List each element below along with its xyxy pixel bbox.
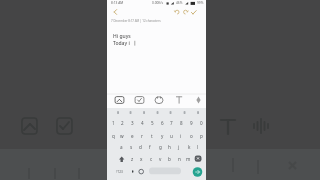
button[interactable]: [180, 6, 189, 18]
staticText: b: [168, 156, 171, 162]
staticText: 9: [190, 120, 193, 126]
button[interactable]: [192, 94, 205, 106]
staticText: m: [186, 156, 191, 162]
staticText: j: [178, 144, 180, 150]
button[interactable]: [192, 166, 203, 177]
staticText: s: [130, 144, 133, 150]
staticText: 6: [161, 120, 164, 126]
button[interactable]: [133, 94, 146, 106]
staticText: 0.00K/s: [152, 1, 164, 5]
button[interactable]: [113, 94, 126, 106]
staticText: p: [200, 133, 203, 139]
staticText: Hi guys: [113, 33, 131, 40]
button[interactable]: [173, 94, 186, 106]
staticText: u: [170, 133, 173, 139]
staticText: i: [180, 133, 182, 139]
staticText: o: [190, 133, 193, 139]
staticText: 0: [200, 120, 203, 126]
staticText: 99%: [197, 1, 204, 5]
staticText: ?123: [116, 170, 123, 174]
staticText: l: [197, 144, 199, 150]
staticText: k: [188, 144, 191, 150]
staticText: 8:13 AM: [111, 1, 124, 5]
staticText: x: [140, 156, 143, 162]
staticText: y: [161, 133, 164, 139]
staticText: f: [149, 144, 151, 150]
staticText: c: [150, 156, 153, 162]
staticText: g: [159, 144, 162, 150]
staticText: e: [131, 133, 134, 139]
staticText: q: [112, 133, 115, 139]
staticText: d: [139, 144, 142, 150]
staticText: 5: [151, 120, 154, 126]
staticText: 4: [141, 120, 144, 126]
staticText: 7 December 8:17 AM | 12 characters: [111, 19, 161, 23]
staticText: r: [141, 133, 143, 139]
staticText: a: [120, 144, 123, 150]
staticText: v: [159, 156, 162, 162]
staticText: 2: [121, 120, 124, 126]
button[interactable]: [171, 6, 180, 18]
staticText: 46%: [176, 1, 183, 5]
staticText: h: [168, 144, 171, 150]
button[interactable]: [153, 94, 166, 106]
button[interactable]: [149, 166, 181, 175]
staticText: z: [131, 156, 134, 162]
staticText: n: [178, 156, 181, 162]
staticText: 3: [131, 120, 134, 126]
button[interactable]: [111, 6, 121, 18]
staticText: t: [151, 133, 153, 139]
staticText: 8: [180, 120, 183, 126]
staticText: w: [120, 133, 124, 139]
staticText: 1: [112, 120, 115, 126]
staticText: 7: [170, 120, 173, 126]
button[interactable]: [189, 6, 199, 18]
staticText: Today i: [113, 40, 130, 47]
